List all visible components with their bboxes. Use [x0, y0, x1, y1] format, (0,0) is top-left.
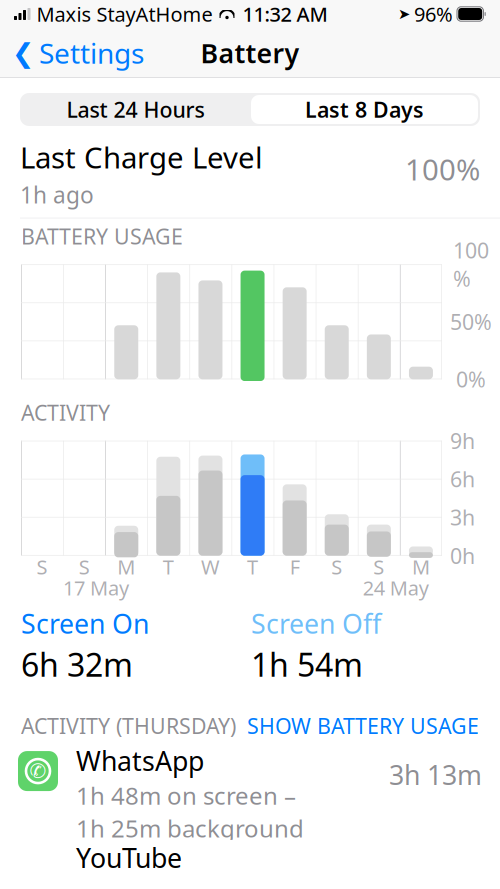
- staticText: 3h 13m: [389, 757, 482, 792]
- staticText: BATTERY USAGE: [21, 222, 183, 250]
- staticText: 9h: [450, 426, 475, 455]
- staticText: Last 24 Hours: [66, 95, 204, 124]
- staticText: T: [247, 553, 258, 580]
- staticText: M: [412, 553, 430, 580]
- staticText: W: [201, 553, 220, 580]
- staticText: ✆: [29, 760, 46, 782]
- staticText: ❮: [12, 38, 34, 68]
- staticText: 11:32 AM: [242, 1, 327, 27]
- staticText: S: [331, 553, 342, 580]
- staticText: 100%: [405, 150, 480, 189]
- staticText: 1h ago: [20, 180, 94, 210]
- staticText: 6h 32m: [21, 643, 133, 686]
- staticText: 50%: [450, 308, 492, 336]
- staticText: 3h: [450, 503, 475, 531]
- staticText: WhatsApp: [76, 743, 204, 778]
- button[interactable]: Last 24 Hours: [21, 94, 250, 125]
- staticText: ACTIVITY: [21, 398, 110, 427]
- staticText: T: [163, 553, 174, 580]
- staticText: 100%: [453, 236, 489, 293]
- button[interactable]: ❮: [0, 31, 156, 75]
- staticText: 17 May: [63, 574, 129, 601]
- staticText: 1h 25m background: [76, 812, 304, 844]
- staticText: Settings: [39, 34, 144, 72]
- staticText: 6h: [450, 465, 475, 493]
- button[interactable]: SHOW BATTERY USAGE: [247, 712, 479, 740]
- staticText: ACTIVITY (THURSDAY): [21, 712, 236, 740]
- staticText: 0h: [450, 541, 475, 570]
- staticText: 1h 48m on screen –: [76, 779, 296, 811]
- staticText: Screen Off: [251, 606, 381, 641]
- staticText: Maxis StayAtHome: [36, 1, 212, 27]
- staticText: M: [117, 553, 135, 580]
- staticText: 1h 54m: [251, 643, 363, 686]
- staticText: 0%: [456, 365, 486, 393]
- staticText: S: [373, 553, 384, 580]
- staticText: S: [79, 553, 90, 580]
- staticText: S: [36, 553, 47, 580]
- staticText: Last 8 Days: [305, 95, 424, 124]
- staticText: F: [290, 553, 300, 580]
- staticText: 96%: [414, 1, 453, 27]
- staticText: Screen On: [21, 606, 149, 641]
- staticText: Battery: [200, 35, 299, 71]
- staticText: YouTube: [76, 840, 182, 875]
- staticText: 24 May: [363, 574, 429, 601]
- button[interactable]: Last 8 Days: [250, 94, 479, 125]
- staticText: ➤: [398, 6, 410, 22]
- staticText: SHOW BATTERY USAGE: [247, 712, 479, 740]
- staticText: Last Charge Level: [20, 138, 263, 177]
